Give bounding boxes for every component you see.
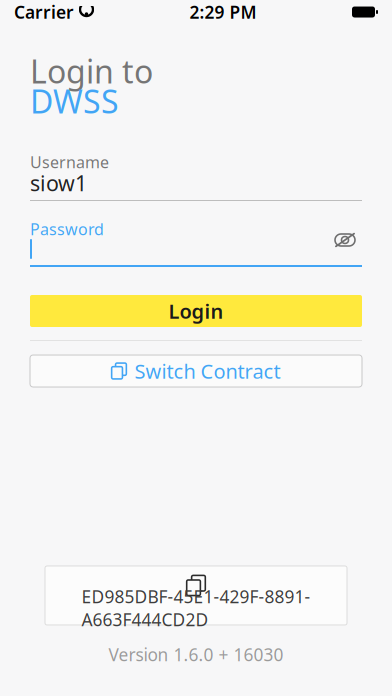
staticText: Switch Contract: [134, 358, 280, 384]
staticText: Password: [30, 218, 104, 240]
staticText: DWSS: [30, 80, 119, 122]
staticText: Version 1.6.0 + 16030: [108, 643, 283, 666]
staticText: Login to: [30, 50, 153, 92]
button[interactable]: Login: [30, 295, 362, 327]
staticText: Login: [168, 298, 223, 324]
button[interactable]: Show password: [328, 223, 362, 257]
button[interactable]: ED985DBF-45E1-429F-8891-A663F444CD2D: [45, 566, 347, 625]
staticText: 2:29 PM: [189, 0, 256, 23]
staticText: ED985DBF-45E1-429F-8891-A663F444CD2D: [81, 585, 310, 631]
staticText: siow1: [30, 169, 87, 197]
staticText: Carrier: [14, 0, 74, 23]
staticText: Username: [30, 151, 109, 173]
button[interactable]: Switch Contract: [30, 355, 362, 387]
